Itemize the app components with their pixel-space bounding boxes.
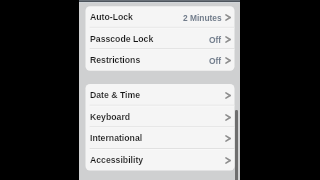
button[interactable]: Passcode Lock [86, 28, 235, 50]
staticText: 2 Minutes [183, 13, 222, 22]
staticText: Off [209, 35, 222, 44]
staticText: Accessibility [90, 155, 144, 165]
other: Open [225, 114, 231, 121]
button[interactable]: Keyboard [86, 106, 235, 128]
button[interactable]: Date & Time [86, 84, 235, 106]
staticText: Off [209, 56, 222, 65]
other: Open [225, 135, 231, 142]
staticText: Auto-Lock [90, 12, 133, 22]
staticText: Keyboard [90, 112, 131, 122]
other: Scroll position [235, 110, 238, 180]
staticText: Date & Time [90, 90, 141, 100]
other: Open [225, 92, 231, 99]
button[interactable]: Accessibility [86, 149, 235, 171]
button[interactable]: Auto-Lock [86, 6, 235, 28]
staticText: Passcode Lock [90, 34, 154, 44]
button[interactable]: Restrictions [86, 49, 235, 71]
staticText: International [90, 133, 143, 143]
staticText: Restrictions [90, 55, 141, 65]
other: Open [225, 157, 231, 164]
other: Open [225, 36, 231, 43]
other: Open [225, 14, 231, 21]
other: Open [225, 57, 231, 64]
button[interactable]: International [86, 127, 235, 149]
